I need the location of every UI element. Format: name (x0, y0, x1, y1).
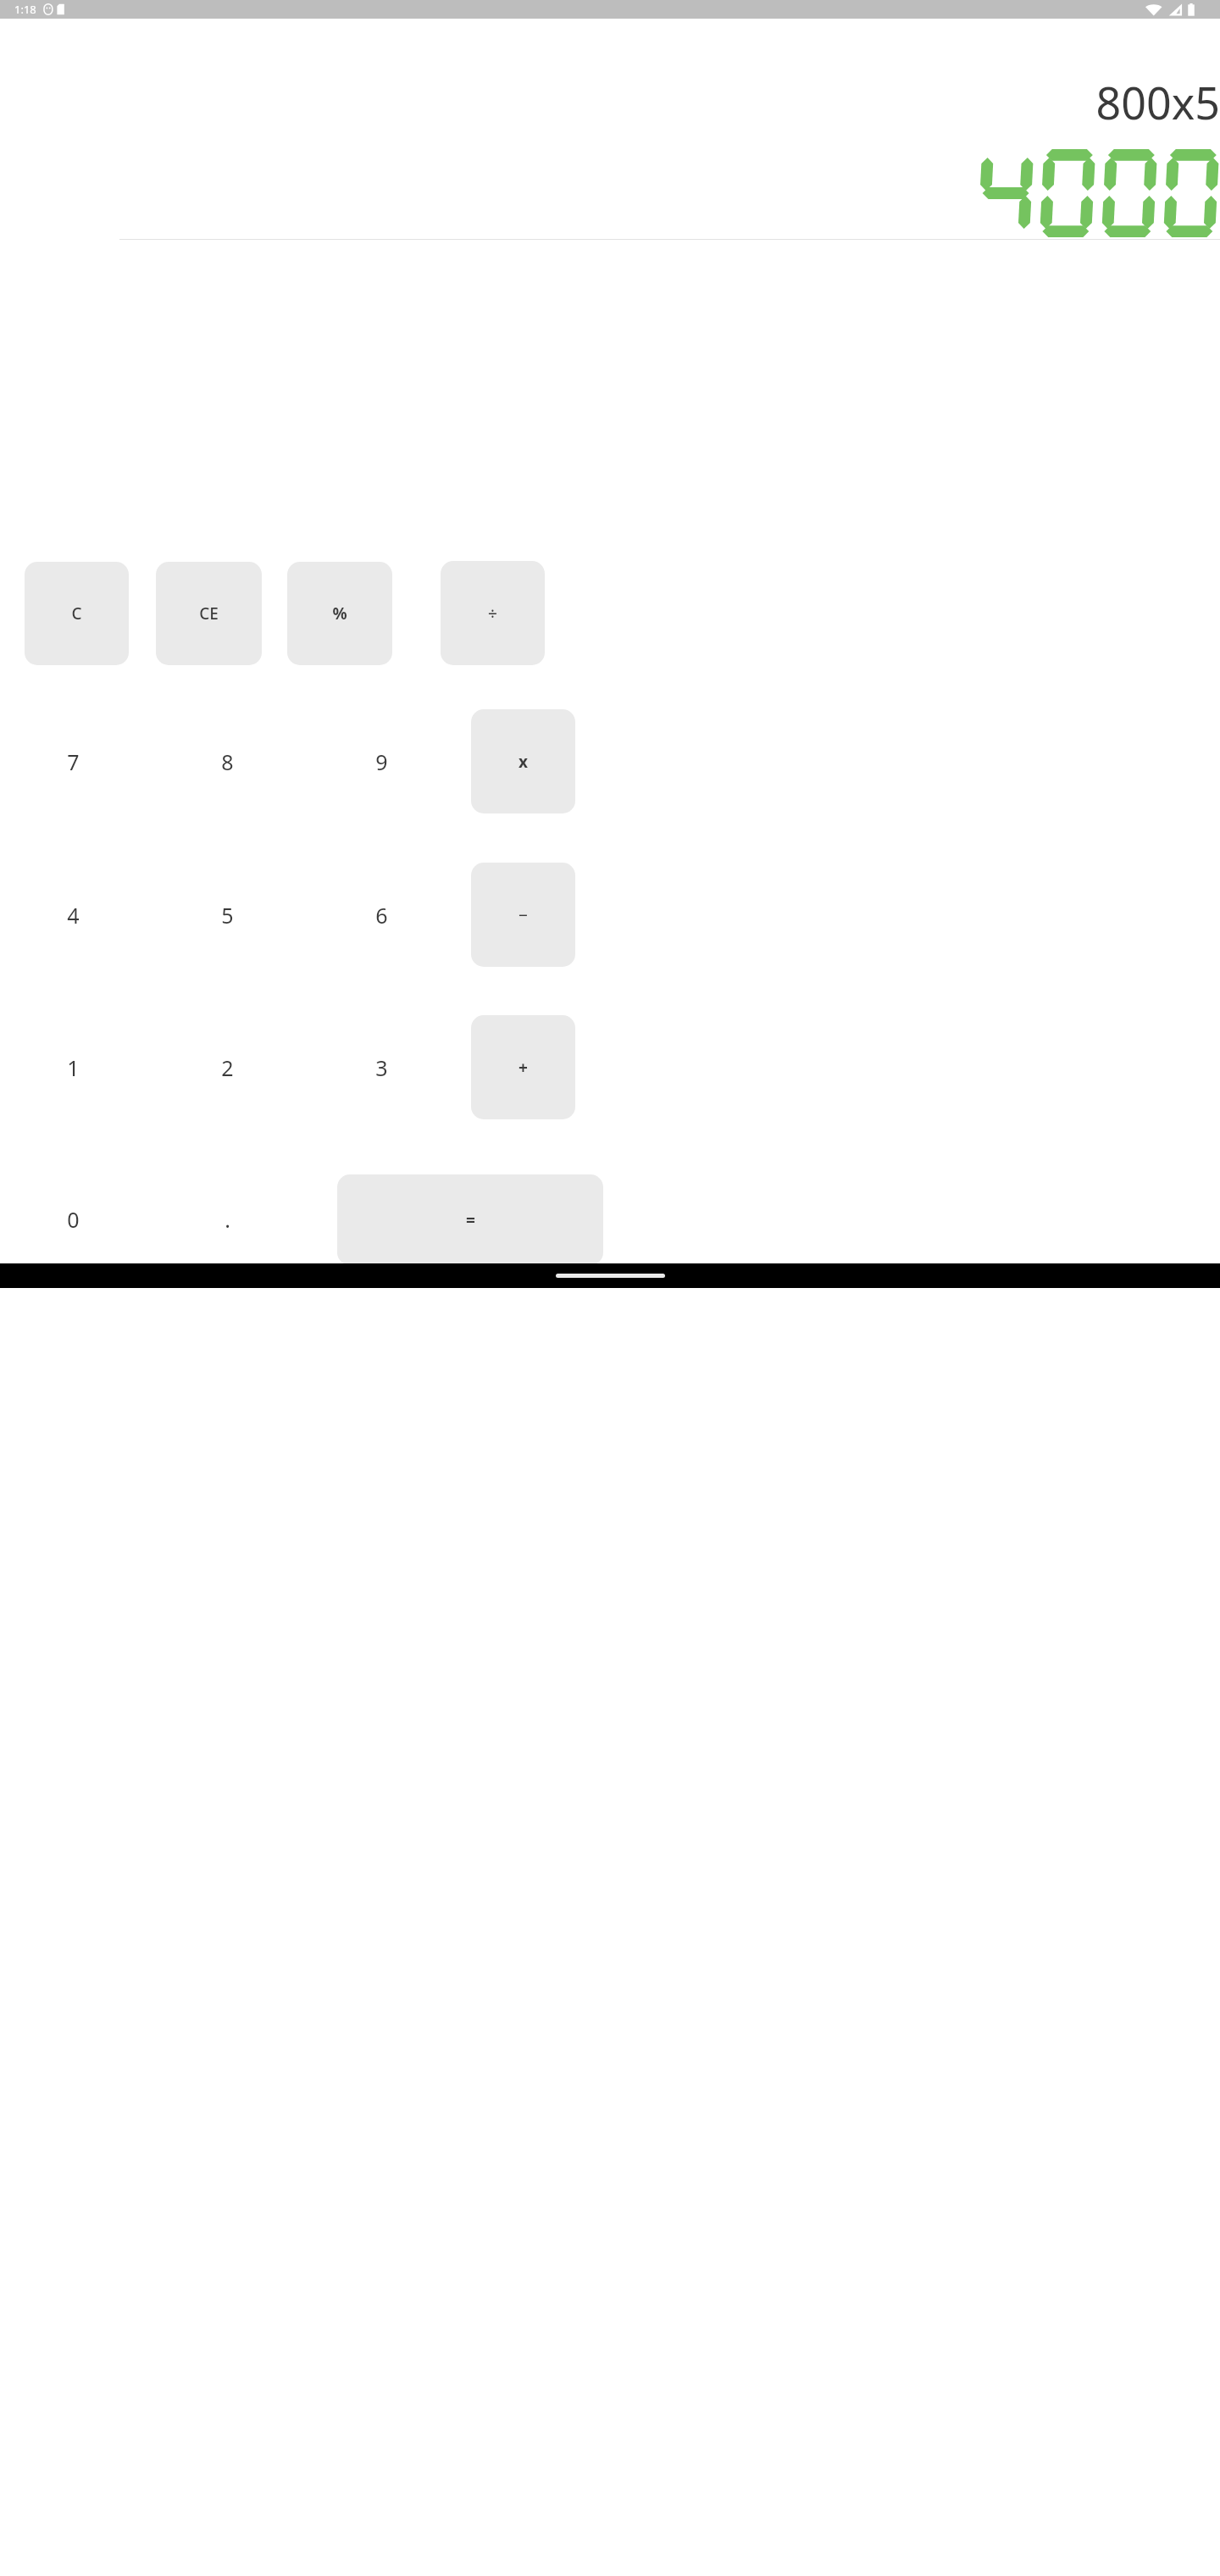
button[interactable]: Clear entry (156, 562, 262, 665)
staticText: 0 (67, 1205, 80, 1234)
staticText: = (466, 1209, 475, 1231)
button[interactable]: 1 (22, 1016, 124, 1119)
button[interactable]: Multiply (471, 709, 575, 813)
button[interactable]: . (176, 1168, 278, 1271)
staticText: . (225, 1205, 230, 1234)
button[interactable]: 7 (22, 710, 124, 813)
staticText: CE (199, 602, 219, 625)
staticText: 7 (67, 747, 80, 776)
staticText: 9 (375, 747, 388, 776)
button[interactable]: 5 (176, 863, 278, 967)
staticText: − (518, 904, 528, 926)
button[interactable]: 6 (330, 863, 432, 967)
button[interactable]: Add (471, 1015, 575, 1119)
staticText: % (332, 602, 347, 625)
staticText: 1:18 (14, 2, 36, 17)
staticText: 4 (67, 901, 80, 930)
staticText: 8 (221, 747, 234, 776)
button[interactable]: 3 (330, 1016, 432, 1119)
staticText: 1 (67, 1053, 80, 1082)
staticText: 5 (221, 901, 234, 930)
button[interactable]: 4 (22, 863, 124, 967)
staticText: 6 (375, 901, 388, 930)
button[interactable]: 8 (176, 710, 278, 813)
button[interactable]: 2 (176, 1016, 278, 1119)
button[interactable]: 0 (22, 1168, 124, 1271)
staticText: + (518, 1057, 528, 1079)
staticText: C (71, 602, 82, 625)
button[interactable]: Percent (287, 562, 392, 665)
staticText: 2 (221, 1053, 234, 1082)
button[interactable]: Divide (441, 561, 545, 665)
button[interactable]: 9 (330, 710, 432, 813)
staticText: 800x5 (1095, 72, 1220, 132)
button[interactable]: Clear (25, 562, 129, 665)
staticText: ÷ (488, 602, 497, 625)
button[interactable]: Equals (337, 1174, 603, 1265)
staticText: 3 (375, 1053, 388, 1082)
staticText: x (518, 751, 528, 773)
button[interactable]: Subtract (471, 863, 575, 967)
